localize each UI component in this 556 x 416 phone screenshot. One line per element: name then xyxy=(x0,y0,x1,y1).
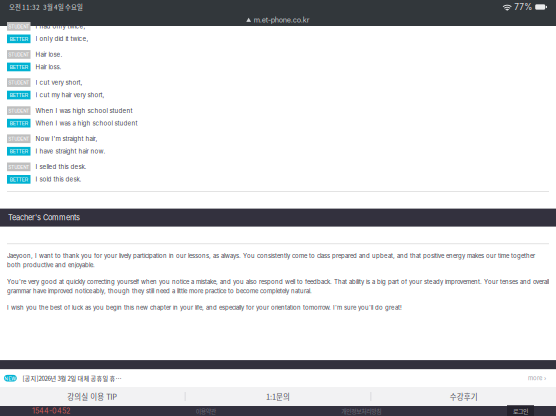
staticText: 77% xyxy=(514,2,532,12)
staticText: STUDENT xyxy=(8,22,29,30)
staticText: 강의실 이용 TIP xyxy=(67,391,117,402)
staticText: [공지]2026년 3월 2일 대체 공휴일 휴… xyxy=(23,374,122,383)
staticText: STUDENT xyxy=(8,79,29,86)
staticText: NEW xyxy=(4,374,16,382)
staticText: You're very good at quickly correcting y… xyxy=(7,278,549,295)
staticText: When I was high school student xyxy=(35,107,132,114)
staticText: BETTER xyxy=(10,147,28,155)
staticText: 1544-0452 xyxy=(32,407,70,415)
button[interactable]: 강의실 이용 TIP xyxy=(0,387,185,406)
staticText: BETTER xyxy=(10,175,28,183)
staticText: BETTER xyxy=(10,91,28,99)
staticText: 오전 11:32 3월 4일 수요일 xyxy=(9,2,83,12)
staticText: I cut my hair very short, xyxy=(35,91,104,99)
button[interactable]: 수강후기 xyxy=(371,387,556,406)
staticText: m.et-phone.co.kr xyxy=(254,16,310,24)
staticText: When I was a high school student xyxy=(35,119,137,127)
staticText: 1:1문의 xyxy=(266,391,290,402)
staticText: BETTER xyxy=(10,63,28,71)
staticText: I selled this desk. xyxy=(35,163,86,170)
staticText: 로그인 xyxy=(513,407,528,415)
staticText: more › xyxy=(528,375,546,382)
staticText: I had only twice, xyxy=(35,23,85,30)
staticText: I sold this desk. xyxy=(35,176,81,183)
staticText: I only did it twice, xyxy=(35,35,88,42)
staticText: STUDENT xyxy=(8,51,29,58)
staticText: Hair lose. xyxy=(35,51,62,58)
staticText: STUDENT xyxy=(8,135,29,143)
staticText: Jaeyoon, I want to thank you for your li… xyxy=(7,252,535,269)
staticText: Teacher's Comments xyxy=(8,213,80,222)
staticText: I have straight hair now. xyxy=(35,147,105,155)
staticText: 개인정보처리방침 xyxy=(341,407,381,415)
staticText: STUDENT xyxy=(8,107,29,114)
button[interactable]: NEW xyxy=(0,369,556,387)
staticText: Hair loss. xyxy=(35,63,61,71)
staticText: I cut very short, xyxy=(35,79,82,86)
staticText: BETTER xyxy=(10,119,28,127)
staticText: I wish you the best of luck as you begin… xyxy=(7,304,402,311)
staticText: STUDENT xyxy=(8,163,29,171)
staticText: Now I'm straight hair, xyxy=(35,135,97,142)
button[interactable]: 1:1문의 xyxy=(186,387,370,406)
staticText: BETTER xyxy=(10,35,28,43)
staticText: 이용약관 xyxy=(196,407,216,415)
staticText: 수강후기 xyxy=(450,391,478,402)
